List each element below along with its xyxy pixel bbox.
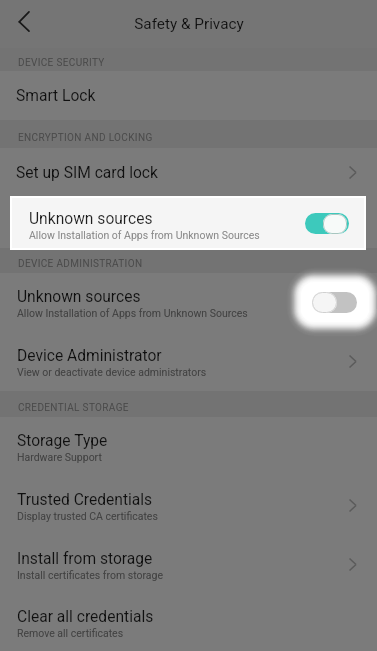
staticText: CREDENTIAL STORAGE	[18, 402, 129, 414]
staticText: Display trusted CA certificates	[17, 510, 158, 522]
staticText: Unknown sources	[29, 210, 153, 228]
button[interactable]: Back	[0, 0, 48, 48]
staticText: Unknown sources	[17, 208, 141, 226]
button[interactable]: Clear all credentials	[0, 594, 377, 651]
button[interactable]: Storage Type	[0, 417, 377, 476]
button[interactable]: Install from storage	[0, 535, 377, 594]
staticText: View or deactivate device administrators	[17, 366, 207, 378]
button[interactable]: Unknown sources	[10, 196, 366, 250]
staticText: Storage Type	[17, 432, 108, 450]
staticText: Trusted Credentials	[17, 491, 153, 509]
staticText: Install certificates from storage	[17, 569, 164, 581]
staticText: Device Administrator	[17, 347, 162, 365]
staticText: ENCRYPTION AND LOCKING	[18, 132, 153, 144]
staticText: Smart Lock	[16, 87, 377, 105]
button[interactable]: Unknown sources	[0, 273, 377, 332]
staticText: Allow Installation of Apps from Unknown …	[17, 227, 248, 239]
staticText: Set up SIM card lock	[16, 164, 349, 182]
staticText: DEVICE SECURITY	[18, 57, 105, 69]
button[interactable]: Device Administrator	[0, 332, 377, 391]
staticText: Install from storage	[17, 550, 153, 568]
staticText: Remove all certificates	[17, 627, 124, 639]
button[interactable]: Unknown sources switch	[312, 292, 357, 313]
button[interactable]: Smart Lock	[0, 71, 377, 120]
staticText: Hardware Support	[17, 451, 102, 463]
button[interactable]: Unknown sources	[0, 197, 377, 248]
staticText: Safety & Privacy	[134, 15, 244, 33]
staticText: Allow Installation of Apps from Unknown …	[29, 229, 260, 241]
button[interactable]: Set up SIM card lock	[0, 148, 377, 197]
staticText: DEVICE ADMINISTRATION	[18, 258, 143, 270]
staticText: Allow Installation of Apps from Unknown …	[17, 307, 248, 319]
button[interactable]: Trusted Credentials	[0, 476, 377, 535]
staticText: Clear all credentials	[17, 608, 154, 626]
staticText: Unknown sources	[17, 288, 141, 306]
